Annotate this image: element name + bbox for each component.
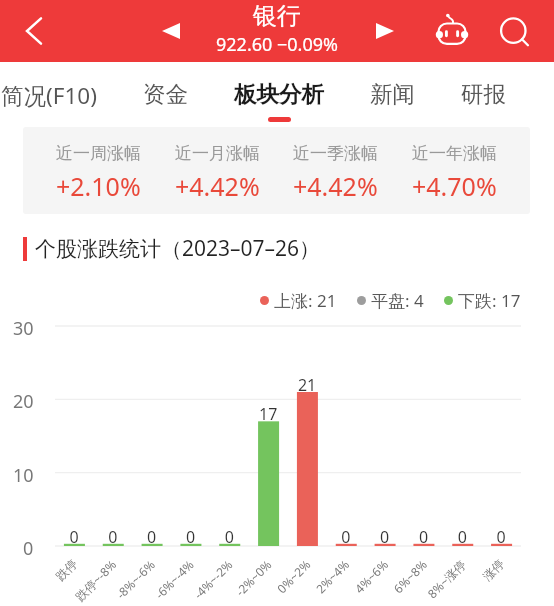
- staticText: 近一月涨幅: [175, 143, 260, 164]
- staticText: 922.60 −0.09%: [216, 32, 338, 57]
- staticText: +4.42%: [293, 169, 378, 203]
- staticText: 新闻: [370, 80, 415, 108]
- staticText: 研报: [461, 80, 506, 108]
- button[interactable]: Previous stock: [151, 11, 191, 51]
- button[interactable]: Next stock: [365, 11, 405, 51]
- staticText: 近一年涨幅: [412, 143, 497, 164]
- staticText: +2.10%: [56, 169, 141, 203]
- staticText: 近一季涨幅: [293, 143, 378, 164]
- staticText: 简况(F10): [1, 80, 97, 111]
- staticText: 下跌: 17: [458, 289, 521, 312]
- staticText: 个股涨跌统计（2023–07–26）: [35, 234, 321, 263]
- staticText: +4.42%: [175, 169, 260, 203]
- staticText: 银行: [253, 1, 301, 31]
- button[interactable]: 平盘: 4: [357, 289, 424, 312]
- staticText: 平盘: 4: [371, 289, 424, 312]
- button[interactable]: 研报: [438, 80, 529, 122]
- button[interactable]: 简况(F10): [0, 80, 120, 125]
- button[interactable]: 板块分析: [211, 80, 347, 122]
- button[interactable]: 新闻: [347, 80, 438, 122]
- button[interactable]: 上涨: 21: [260, 289, 337, 312]
- button[interactable]: 资金: [120, 80, 211, 122]
- staticText: 上涨: 21: [274, 289, 337, 312]
- staticText: +4.70%: [412, 169, 497, 203]
- button[interactable]: 下跌: 17: [444, 289, 521, 312]
- staticText: 资金: [143, 80, 188, 108]
- staticText: 近一周涨幅: [56, 143, 141, 164]
- button[interactable]: Back: [7, 4, 61, 58]
- button[interactable]: AI assistant: [429, 8, 475, 54]
- staticText: 板块分析: [234, 80, 324, 108]
- button[interactable]: Search: [490, 6, 540, 56]
